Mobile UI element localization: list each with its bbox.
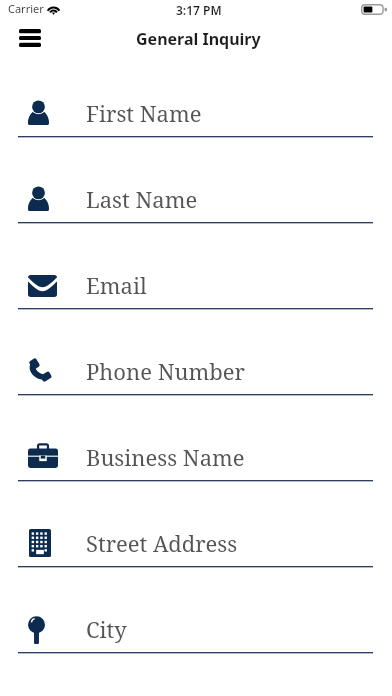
button[interactable]: Last Name	[0, 137, 392, 223]
staticText: Phone Number	[86, 356, 245, 386]
staticText: City	[86, 614, 127, 644]
staticText: Carrier	[8, 1, 44, 16]
button[interactable]: Business Name	[0, 395, 392, 481]
staticText: Business Name	[86, 442, 245, 472]
button[interactable]: Phone Number	[0, 309, 392, 395]
staticText: Last Name	[86, 184, 198, 214]
button[interactable]: Street Address	[0, 481, 392, 567]
staticText: Street Address	[86, 528, 238, 558]
staticText: General Inquiry	[136, 28, 261, 50]
button[interactable]: First Name	[0, 51, 392, 137]
staticText: First Name	[86, 98, 202, 128]
staticText: Email	[86, 270, 147, 300]
button[interactable]: Open navigation menu	[10, 20, 49, 55]
button[interactable]: City	[0, 567, 392, 653]
staticText: 3:17 PM	[176, 2, 222, 18]
button[interactable]: Email	[0, 223, 392, 309]
